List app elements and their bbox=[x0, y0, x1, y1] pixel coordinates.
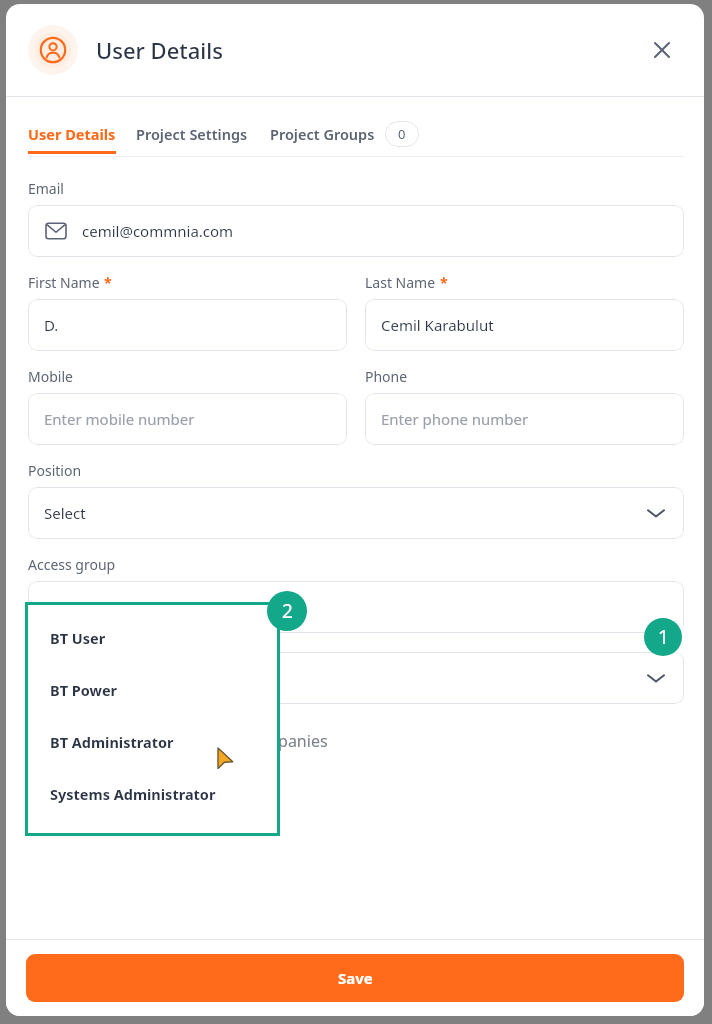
staticText: Systems Administrator bbox=[50, 784, 216, 804]
staticText: User Details bbox=[96, 35, 223, 65]
button[interactable]: D. bbox=[28, 299, 347, 351]
staticText: BT Administrator bbox=[50, 732, 174, 752]
button[interactable]: Access to confidential email bbox=[28, 768, 684, 790]
button[interactable]: Close bbox=[642, 30, 682, 70]
staticText: BT Power bbox=[50, 680, 118, 700]
button[interactable]: User Details bbox=[28, 124, 116, 151]
button[interactable]: Enter mobile number bbox=[28, 393, 347, 445]
button[interactable]: Project Settings bbox=[136, 124, 248, 153]
button[interactable]: Project Groups bbox=[270, 121, 419, 156]
staticText: Position bbox=[28, 461, 82, 480]
button[interactable]: Systems Administrator bbox=[28, 783, 277, 805]
button[interactable]: Open dropdown bbox=[28, 581, 684, 633]
staticText: cemil@commnia.com bbox=[82, 221, 234, 241]
staticText: Enter mobile number bbox=[44, 409, 195, 429]
staticText: * bbox=[440, 273, 448, 292]
button[interactable]: Create, edit contacts & companies bbox=[28, 730, 684, 752]
staticText: Save bbox=[338, 968, 373, 988]
staticText: * bbox=[104, 273, 112, 292]
button[interactable]: Cemil Karabulut bbox=[365, 299, 684, 351]
staticText: BT User bbox=[50, 628, 106, 648]
staticText: Project Groups bbox=[270, 124, 375, 144]
button[interactable]: BT Power bbox=[28, 679, 277, 701]
staticText: D. bbox=[44, 315, 59, 335]
button[interactable]: Open dropdown bbox=[28, 652, 684, 704]
button[interactable]: Open dropdown bbox=[28, 487, 684, 539]
staticText: 1 bbox=[658, 624, 669, 650]
staticText: Cemil Karabulut bbox=[381, 315, 494, 335]
staticText: Phone bbox=[365, 367, 408, 386]
staticText: Access to confidential email bbox=[72, 768, 280, 790]
staticText: Project Settings bbox=[136, 124, 248, 144]
button[interactable]: Save bbox=[26, 954, 684, 1002]
button[interactable]: BT User bbox=[28, 627, 277, 649]
staticText: Email bbox=[28, 179, 64, 198]
staticText: Select bbox=[44, 503, 86, 523]
staticText: Create, edit contacts & companies bbox=[72, 730, 328, 752]
staticText: Enter phone number bbox=[381, 409, 529, 429]
button[interactable]: cemil@commnia.com bbox=[28, 205, 684, 257]
staticText: Mobile bbox=[28, 367, 73, 386]
staticText: Last Name bbox=[365, 273, 436, 292]
button[interactable]: Enter phone number bbox=[365, 393, 684, 445]
staticText: First Name bbox=[28, 273, 100, 292]
staticText: 2 bbox=[282, 598, 293, 624]
staticText: User Details bbox=[28, 124, 116, 144]
staticText: 0 bbox=[398, 125, 406, 143]
staticText: Access group bbox=[28, 555, 116, 574]
button[interactable]: BT Administrator bbox=[28, 731, 277, 753]
